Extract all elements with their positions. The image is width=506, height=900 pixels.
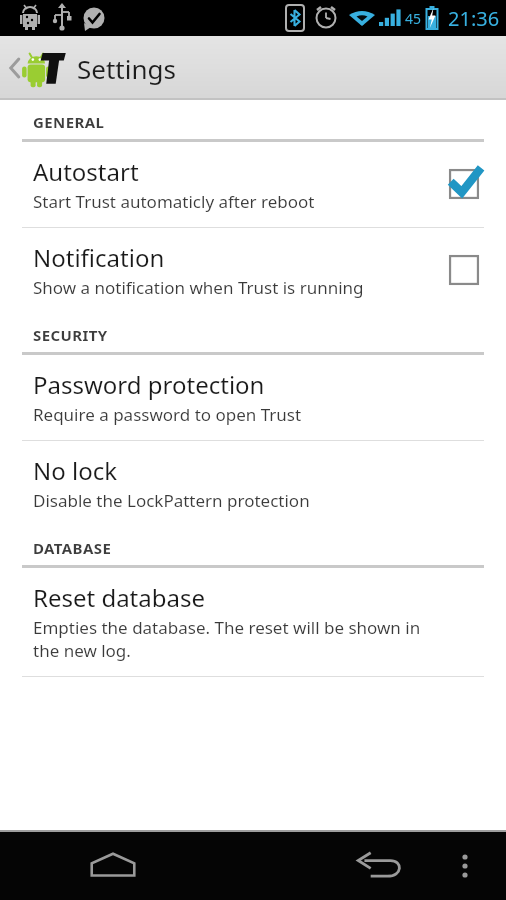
staticText: Settings (77, 51, 176, 86)
staticText: DATABASE (33, 538, 112, 558)
button[interactable]: Navigate up (0, 36, 184, 100)
button[interactable]: Unchecked (444, 250, 484, 290)
staticText: Autostart (33, 155, 139, 188)
staticText: No lock (33, 454, 118, 487)
staticText: Show a notification when Trust is runnin… (33, 276, 386, 299)
button[interactable]: No lock (0, 441, 506, 526)
button[interactable]: Autostart (0, 142, 506, 227)
staticText: Notification (33, 241, 165, 274)
staticText: Reset database (33, 581, 206, 614)
button[interactable]: Home (78, 832, 148, 900)
staticText: Password protection (33, 368, 265, 401)
button[interactable]: Reset database (0, 568, 506, 676)
staticText: GENERAL (33, 112, 105, 132)
button[interactable]: More options (436, 837, 494, 895)
button[interactable]: Back (344, 832, 414, 900)
staticText: 21:36 (448, 5, 500, 32)
staticText: 45 (405, 9, 422, 28)
staticText: Empties the database. The reset will be … (33, 616, 430, 662)
staticText: Start Trust automaticly after reboot (33, 190, 386, 213)
button[interactable]: Notification (0, 228, 506, 313)
button[interactable]: Checked (444, 164, 484, 204)
staticText: Disable the LockPattern protection (33, 489, 430, 512)
button[interactable]: Password protection (0, 355, 506, 440)
staticText: Require a password to open Trust (33, 403, 430, 426)
staticText: SECURITY (33, 325, 108, 345)
